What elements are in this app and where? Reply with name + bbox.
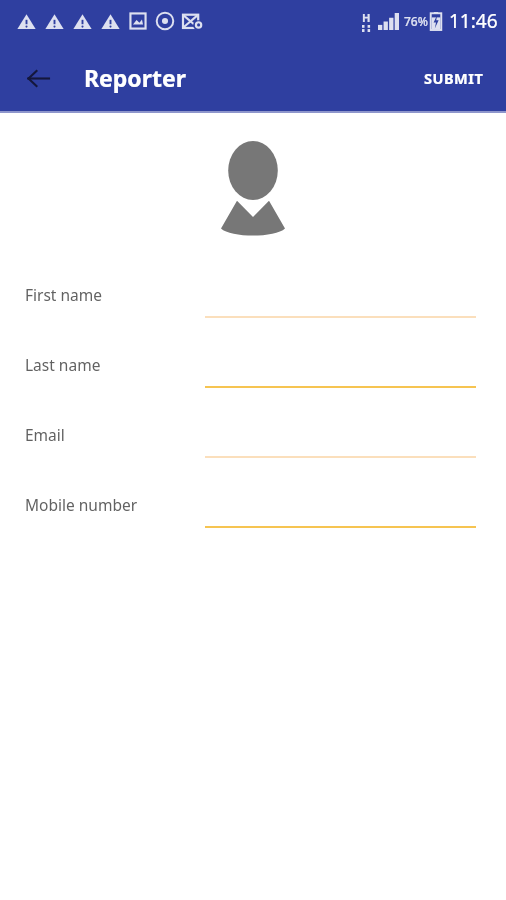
staticText: Mobile number: [25, 494, 205, 515]
button[interactable]: Profile photo: [213, 141, 293, 236]
staticText: H: [362, 10, 371, 25]
button[interactable]: Email: [0, 411, 506, 458]
staticText: 11:46: [449, 8, 498, 34]
staticText: First name: [25, 284, 205, 305]
staticText: SUBMIT: [424, 68, 484, 88]
button[interactable]: SUBMIT: [412, 56, 496, 100]
button[interactable]: Back: [14, 54, 62, 102]
staticText: Reporter: [84, 62, 187, 93]
staticText: 76%: [404, 13, 428, 29]
button[interactable]: Mobile number: [0, 481, 506, 528]
staticText: Email: [25, 424, 205, 445]
button[interactable]: Last name: [0, 341, 506, 388]
button[interactable]: First name: [0, 271, 506, 318]
staticText: Last name: [25, 354, 205, 375]
